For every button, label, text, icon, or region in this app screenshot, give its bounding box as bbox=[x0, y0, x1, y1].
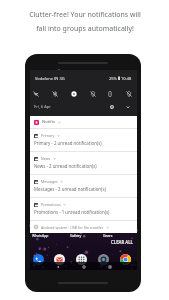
staticText: Messages bbox=[41, 179, 58, 184]
staticText: News bbox=[41, 156, 51, 161]
staticText: 25% bbox=[109, 76, 117, 81]
button[interactable]: Primary bbox=[30, 129, 137, 151]
button[interactable]: Settings bbox=[107, 102, 116, 111]
button[interactable]: CLEAR ALL bbox=[109, 237, 135, 247]
button[interactable]: Chrome bbox=[120, 254, 131, 265]
button[interactable]: Apps bbox=[76, 254, 87, 265]
staticText: Primary - 2 unread notification(s) bbox=[34, 140, 102, 146]
staticText: Android system · USB for file transfer bbox=[41, 225, 104, 230]
staticText: fall into groups automatically! bbox=[36, 24, 134, 34]
staticText: Vodafone IN 3G bbox=[35, 76, 65, 81]
button[interactable]: Back bbox=[54, 263, 61, 270]
staticText: Primary bbox=[41, 133, 55, 138]
staticText: Messages - 2 unread notification(s) bbox=[34, 186, 106, 192]
button[interactable]: Quick setting 5 bbox=[124, 89, 133, 98]
button[interactable]: Phone bbox=[33, 254, 44, 265]
staticText: WhatsApp bbox=[32, 233, 49, 238]
staticText: 10:48 bbox=[121, 76, 132, 81]
staticText: News - 2 unread notification(s) bbox=[34, 163, 97, 169]
staticText: CLEAR ALL bbox=[111, 239, 133, 245]
button[interactable]: Camera bbox=[98, 254, 109, 265]
button[interactable]: Recents bbox=[106, 263, 113, 270]
button[interactable]: Quick setting 2 bbox=[69, 89, 78, 98]
button[interactable]: Quick setting 3 bbox=[88, 89, 97, 98]
button[interactable]: Gmail bbox=[54, 254, 65, 265]
staticText: Clutter-free! Your notifications will bbox=[29, 10, 141, 20]
button[interactable]: Promotions bbox=[30, 198, 137, 220]
staticText: Promotions - 1 unread notification(s) bbox=[34, 209, 110, 215]
button[interactable]: Quick setting 0 bbox=[31, 89, 40, 98]
button[interactable]: Home bbox=[80, 263, 87, 270]
button[interactable]: Quick setting 1 bbox=[50, 89, 59, 98]
staticText: Notifix bbox=[42, 119, 56, 125]
button[interactable]: Expand bbox=[123, 102, 132, 111]
staticText: Promotions bbox=[41, 202, 61, 207]
button[interactable]: Android system · USB for file transfer bbox=[30, 221, 137, 233]
button[interactable]: Messages bbox=[30, 175, 137, 197]
button[interactable]: Quick setting 4 bbox=[105, 89, 114, 98]
button[interactable]: News bbox=[30, 152, 137, 174]
staticText: Gallery bbox=[70, 233, 82, 238]
staticText: Fri, 6 Apr bbox=[34, 104, 51, 109]
staticText: Gears bbox=[103, 233, 113, 238]
